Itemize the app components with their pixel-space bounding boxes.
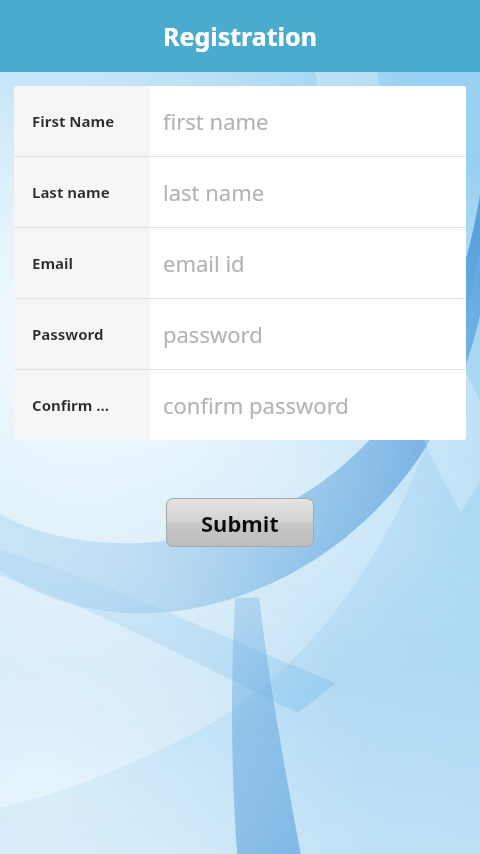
- button[interactable]: Password: [14, 299, 466, 369]
- staticText: First Name: [32, 111, 115, 131]
- button[interactable]: Email: [14, 228, 466, 298]
- staticText: last name: [163, 177, 265, 207]
- staticText: confirm password: [163, 390, 349, 420]
- button[interactable]: Confirm ...: [14, 370, 466, 440]
- staticText: password: [163, 319, 263, 349]
- button[interactable]: Submit: [167, 499, 313, 546]
- staticText: Confirm ...: [32, 395, 109, 415]
- staticText: Last name: [32, 182, 110, 202]
- staticText: Submit: [201, 508, 279, 538]
- button[interactable]: First Name: [14, 86, 466, 156]
- staticText: email id: [163, 248, 245, 278]
- staticText: first name: [163, 106, 269, 136]
- button[interactable]: Last name: [14, 157, 466, 227]
- staticText: Email: [32, 253, 73, 273]
- staticText: Registration: [163, 19, 317, 53]
- staticText: Password: [32, 324, 104, 344]
